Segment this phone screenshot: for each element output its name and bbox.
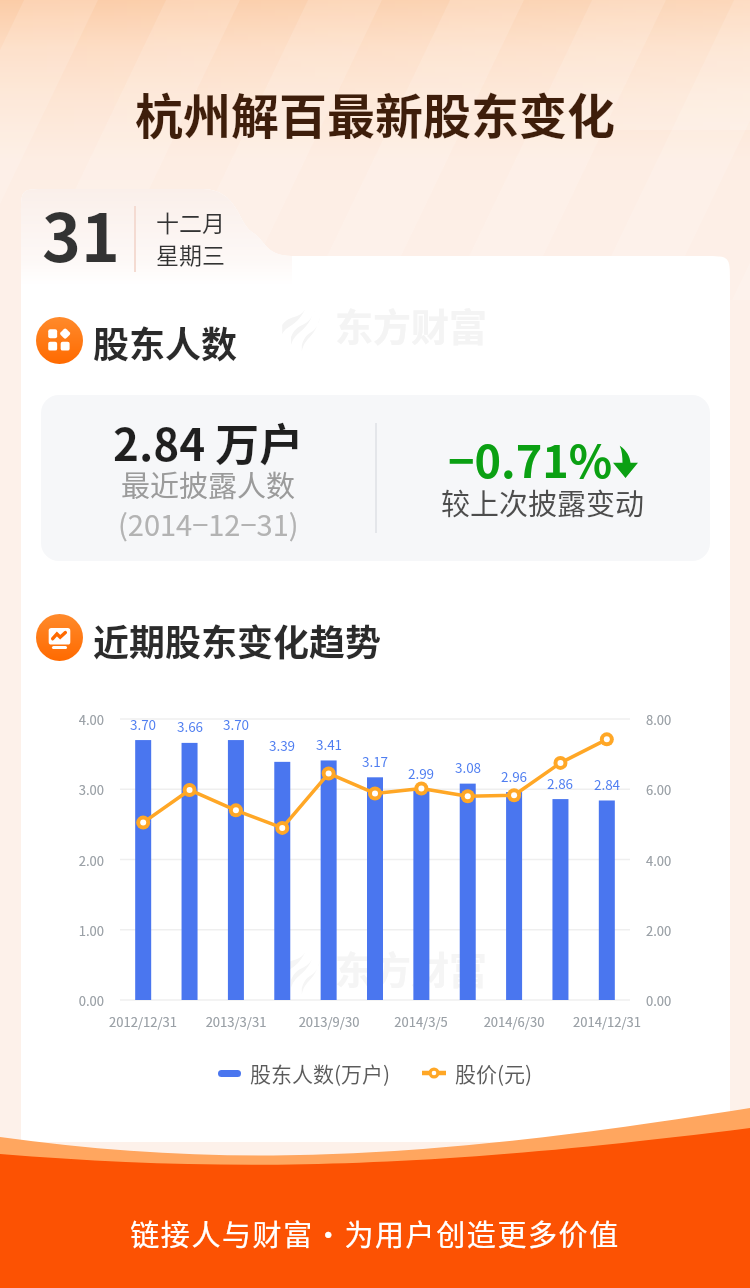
staticText: (2014−12−31) <box>118 502 299 544</box>
staticText: 2.96 <box>484 766 544 786</box>
staticText: 2.99 <box>391 763 451 783</box>
staticText: 3.39 <box>252 735 312 755</box>
staticText: 2013/3/31 <box>176 1012 296 1031</box>
button[interactable]: 近期股东变化趋势 <box>36 614 382 661</box>
staticText: 东方财富 <box>335 297 488 352</box>
staticText: 2.84 万户 <box>113 410 304 474</box>
staticText: 股东人数(万户) <box>250 1058 391 1088</box>
staticText: 3.70 <box>113 714 173 734</box>
staticText: 31 <box>42 185 120 281</box>
staticText: 2013/9/30 <box>269 1012 389 1031</box>
button[interactable]: 2.84 万户 <box>41 395 710 561</box>
staticText: 2014/6/30 <box>454 1012 574 1031</box>
button[interactable]: 股东人数 <box>36 316 238 364</box>
staticText: 2.86 <box>530 773 590 793</box>
staticText: 2.84 <box>577 774 637 794</box>
staticText: 3.00 <box>44 780 104 799</box>
staticText: 东方财富 <box>335 940 488 995</box>
staticText: 3.41 <box>299 734 359 754</box>
staticText: 股价(元) <box>455 1058 533 1088</box>
staticText: 3.17 <box>345 751 405 771</box>
staticText: 3.08 <box>438 757 498 777</box>
staticText: 0.00 <box>44 991 104 1010</box>
staticText: 较上次披露变动 <box>441 481 645 523</box>
staticText: 3.70 <box>206 714 266 734</box>
staticText: 2012/12/31 <box>83 1012 203 1031</box>
staticText: 4.00 <box>44 710 104 729</box>
staticText: 2014/3/5 <box>361 1012 481 1031</box>
staticText: 十二月 <box>156 205 225 238</box>
staticText: 4.00 <box>646 851 672 870</box>
staticText: 8.00 <box>646 710 672 729</box>
staticText: 杭州解百最新股东变化 <box>0 78 750 148</box>
staticText: 股东人数 <box>93 316 238 364</box>
staticText: 最近披露人数 <box>121 463 296 505</box>
staticText: 2014/12/31 <box>547 1012 667 1031</box>
staticText: 2.00 <box>646 921 672 940</box>
button[interactable]: 股价(元) <box>420 1056 535 1090</box>
staticText: 2.00 <box>44 851 104 870</box>
button[interactable]: 股东人数(万户) <box>216 1056 393 1090</box>
staticText: 0.00 <box>646 991 672 1010</box>
staticText: 链接人与财富·为用户创造更多价值 <box>0 1212 750 1254</box>
staticText: 星期三 <box>156 237 225 270</box>
staticText: 3.66 <box>160 716 220 736</box>
staticText: −0.71% <box>448 426 613 491</box>
staticText: 近期股东变化趋势 <box>93 614 382 661</box>
staticText: 1.00 <box>44 921 104 940</box>
staticText: 6.00 <box>646 780 672 799</box>
